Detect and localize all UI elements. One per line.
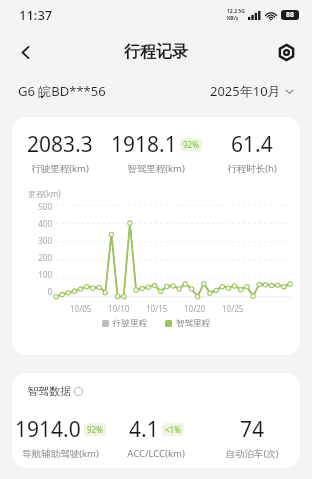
staticText: G6 皖BD***56 xyxy=(18,82,106,100)
staticText: 0 xyxy=(47,286,52,297)
staticText: 智驾里程 xyxy=(176,318,210,329)
staticText: 92% xyxy=(87,424,103,435)
staticText: 2083.3 xyxy=(27,130,93,159)
staticText: 10/20 xyxy=(184,303,206,314)
staticText: 1914.0 xyxy=(15,415,81,444)
staticText: 导航辅助驾驶(km) xyxy=(22,447,99,460)
staticText: 10/25 xyxy=(222,303,244,314)
staticText: 行程时长(h) xyxy=(227,162,277,175)
staticText: 74 xyxy=(240,415,265,444)
staticText: 行驶里程(km) xyxy=(31,162,89,175)
button[interactable]: Settings xyxy=(267,33,305,71)
staticText: 12.2 5G xyxy=(227,8,245,15)
button[interactable]: 2025年10月 xyxy=(210,82,294,100)
staticText: 400 xyxy=(38,218,52,229)
staticText: 1918.1 xyxy=(111,130,177,159)
button[interactable]: Back xyxy=(4,31,46,73)
staticText: 88 xyxy=(286,10,295,20)
staticText: 2025年10月 xyxy=(210,82,281,100)
staticText: 10/05 xyxy=(70,303,92,314)
staticText: 10/10 xyxy=(108,303,130,314)
staticText: 行程记录 xyxy=(124,42,188,62)
staticText: 4.1 xyxy=(129,415,159,444)
staticText: <1% xyxy=(165,424,181,435)
staticText: KB/s xyxy=(227,15,239,22)
staticText: 自动泊车(次) xyxy=(225,447,279,460)
staticText: 智驾数据 xyxy=(27,384,71,398)
staticText: 61.4 xyxy=(231,130,273,159)
staticText: 里程(km) xyxy=(28,188,61,199)
staticText: 智驾里程(km) xyxy=(127,162,185,175)
button[interactable]: Info xyxy=(73,386,83,396)
staticText: 200 xyxy=(38,252,52,263)
staticText: 行驶里程 xyxy=(113,318,147,329)
staticText: ACC/LCC(km) xyxy=(127,447,185,460)
staticText: 300 xyxy=(38,235,52,246)
staticText: 100 xyxy=(38,269,52,280)
staticText: 92% xyxy=(183,139,199,150)
staticText: 11:37 xyxy=(19,6,53,24)
staticText: 500 xyxy=(38,201,52,212)
staticText: 10/15 xyxy=(146,303,168,314)
